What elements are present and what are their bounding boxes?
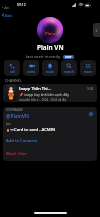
staticText: 09:12 [17,2,26,7]
staticText: CHANNEL [5,78,22,83]
staticText: Plain [45,31,56,37]
staticText: last seen recently [26,54,61,60]
staticText: Add to Contacts [6,138,38,144]
staticText: call [10,70,15,74]
staticText: Plain VN [37,43,64,52]
button[interactable]: Add to Contacts [3,134,97,147]
staticText: Inapp Thần Thiên - Điển Đàn Viện [19,86,53,91]
staticText: video [27,70,36,74]
button[interactable]: video [23,60,39,76]
staticText: search [64,70,74,74]
button[interactable]: Expand panel [93,23,100,37]
button[interactable]: more [80,60,96,76]
staticText: 📌 inapp hay ảnh bên cạnh đầy [19,92,69,97]
staticText: nguyễn tấn c... 0:04 - 0:04 và đủ [19,98,67,101]
staticText: user [65,55,72,59]
staticText: bio [6,122,11,126]
button[interactable]: mute [42,60,58,76]
staticText: Card to card - ACMIN [14,127,56,133]
button[interactable]: Block User [3,147,97,161]
button[interactable]: Inapp Thần Thiên - Điển Đàn Viện [3,84,97,102]
staticText: Back [5,13,13,17]
button[interactable]: call [4,60,20,76]
staticText: • 2sn [2,6,9,10]
button[interactable]: USERNAME [3,107,97,120]
staticText: USERNAME [6,108,23,112]
staticText: mute [46,70,54,74]
button[interactable]: search [61,60,77,76]
staticText: @PlainVN [6,113,29,120]
staticText: Block User [6,151,27,157]
staticText: more [84,70,92,74]
button[interactable]: Profile photo [37,17,63,43]
staticText: 9:04 [87,87,94,91]
button[interactable]: bio [3,120,97,134]
button[interactable]: Back [1,13,13,17]
